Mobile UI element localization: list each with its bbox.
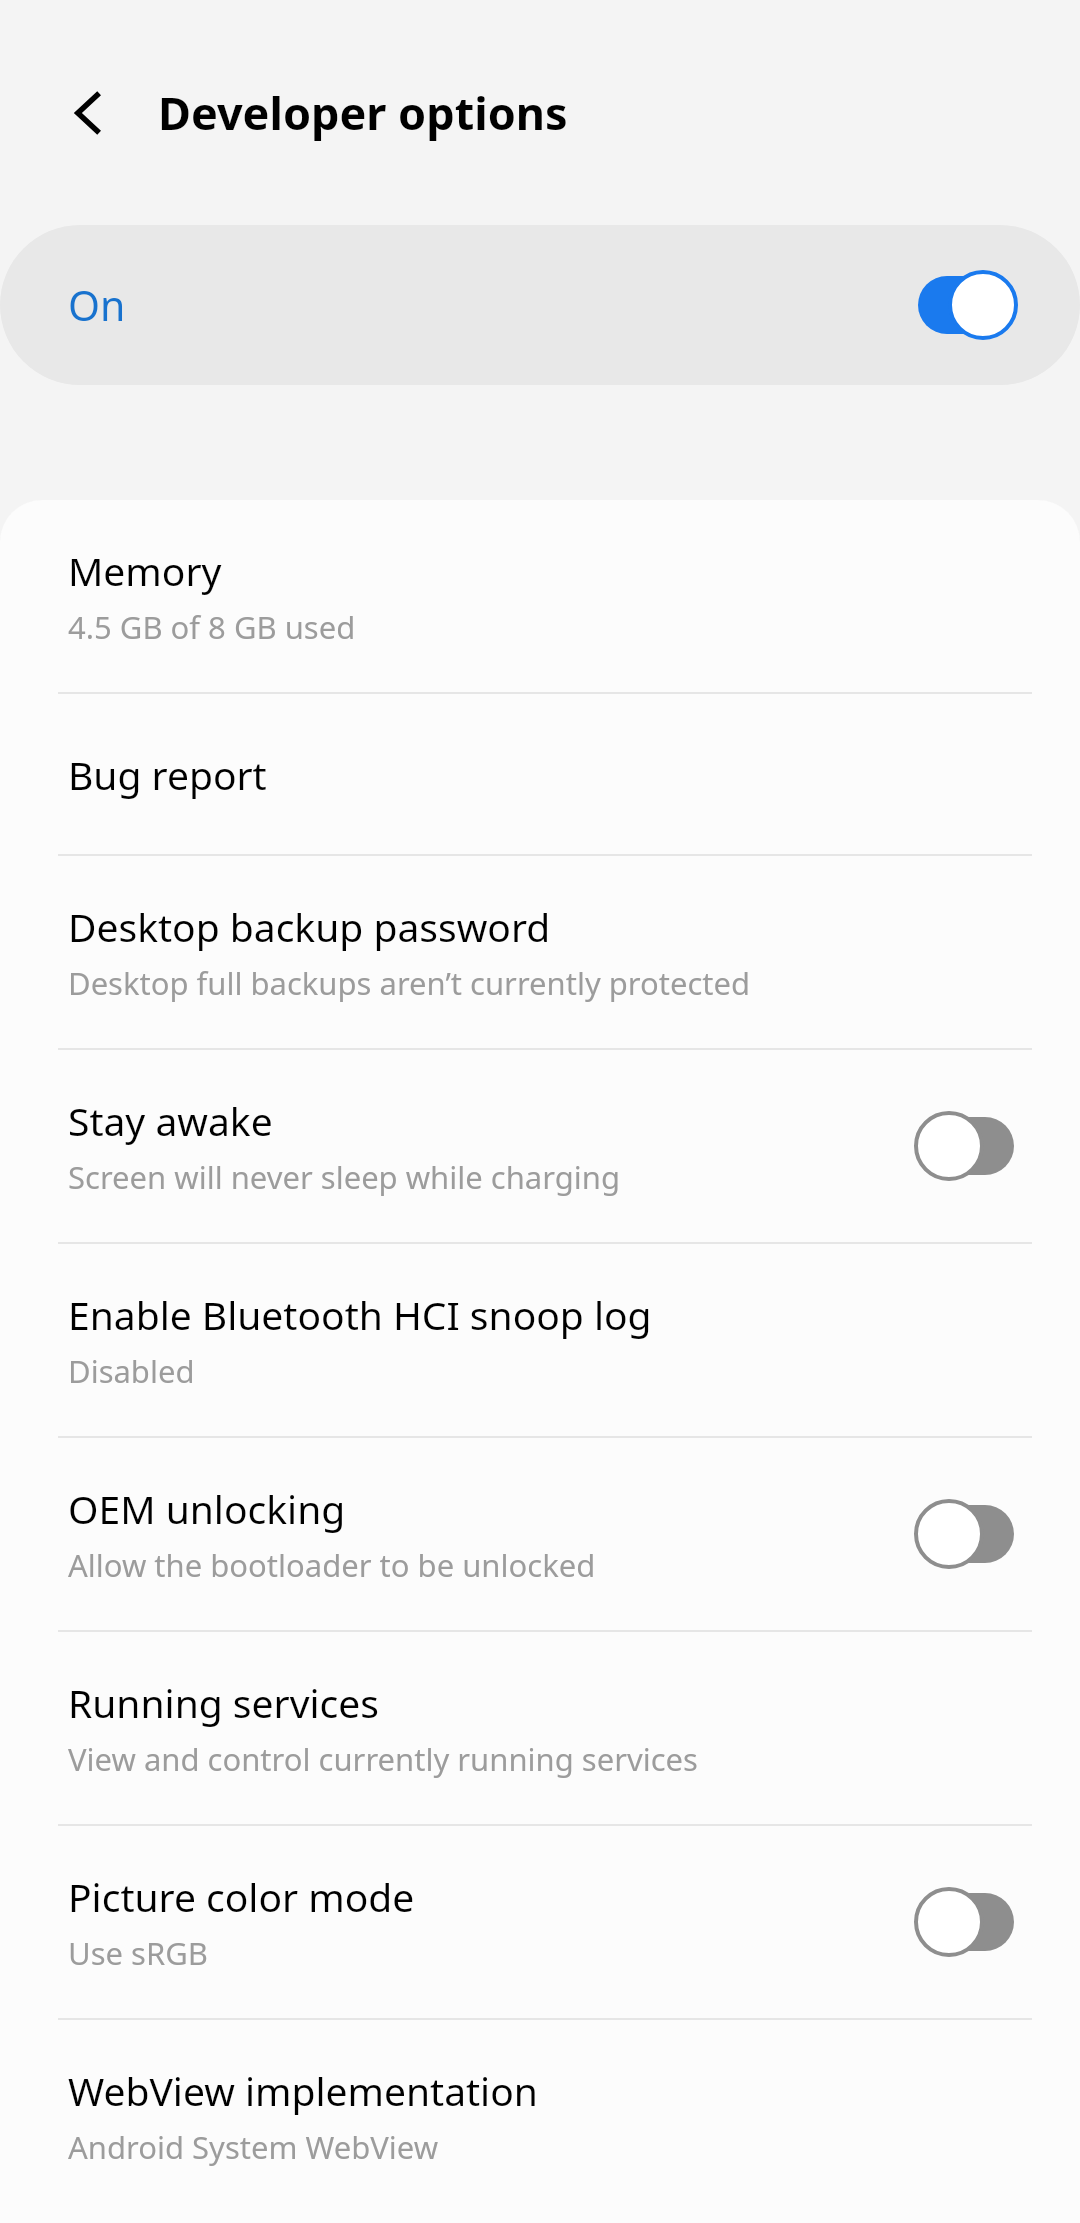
staticText: Stay awake	[68, 1094, 273, 1147]
button[interactable]: Toggle off	[914, 1499, 1018, 1569]
button[interactable]: WebView implementation	[0, 2020, 1080, 2212]
staticText: 4.5 GB of 8 GB used	[68, 606, 356, 648]
button[interactable]: Back	[52, 75, 128, 151]
button[interactable]: Enable Bluetooth HCI snoop log	[0, 1244, 1080, 1436]
staticText: Desktop backup password	[68, 900, 551, 953]
button[interactable]: Toggle on	[914, 270, 1018, 340]
button[interactable]: Desktop backup password	[0, 856, 1080, 1048]
staticText: Enable Bluetooth HCI snoop log	[68, 1288, 652, 1341]
staticText: Android System WebView	[68, 2126, 439, 2168]
staticText: View and control currently running servi…	[68, 1738, 698, 1780]
button[interactable]: OEM unlocking	[0, 1438, 1080, 1630]
staticText: Disabled	[68, 1350, 195, 1392]
button[interactable]: Running services	[0, 1632, 1080, 1824]
button[interactable]: Toggle off	[914, 1887, 1018, 1957]
staticText: On	[68, 277, 126, 333]
staticText: Bug report	[68, 748, 267, 801]
button[interactable]: Bug report	[0, 694, 1080, 854]
staticText: Developer options	[158, 82, 568, 143]
button[interactable]: Toggle off	[914, 1111, 1018, 1181]
button[interactable]: On	[0, 225, 1080, 385]
staticText: Allow the bootloader to be unlocked	[68, 1544, 596, 1586]
staticText: Desktop full backups aren’t currently pr…	[68, 962, 751, 1004]
button[interactable]: Stay awake	[0, 1050, 1080, 1242]
staticText: WebView implementation	[68, 2064, 538, 2117]
button[interactable]: Picture color mode	[0, 1826, 1080, 2018]
staticText: Memory	[68, 544, 222, 597]
button[interactable]: Memory	[0, 500, 1080, 692]
staticText: Picture color mode	[68, 1870, 415, 1923]
staticText: OEM unlocking	[68, 1482, 346, 1535]
staticText: Use sRGB	[68, 1932, 208, 1974]
staticText: Running services	[68, 1676, 379, 1729]
staticText: Screen will never sleep while charging	[68, 1156, 621, 1198]
